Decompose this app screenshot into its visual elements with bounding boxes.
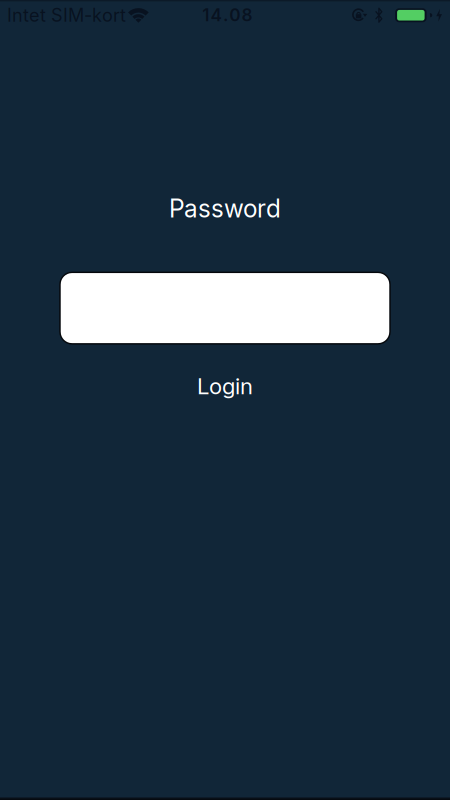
staticText: Login xyxy=(197,373,253,400)
staticText: Password xyxy=(169,193,281,223)
staticText: Intet SIM-kort xyxy=(7,4,126,26)
button[interactable]: Password xyxy=(60,272,390,344)
button[interactable]: Login xyxy=(197,373,253,400)
staticText: 14.08 xyxy=(202,5,253,25)
